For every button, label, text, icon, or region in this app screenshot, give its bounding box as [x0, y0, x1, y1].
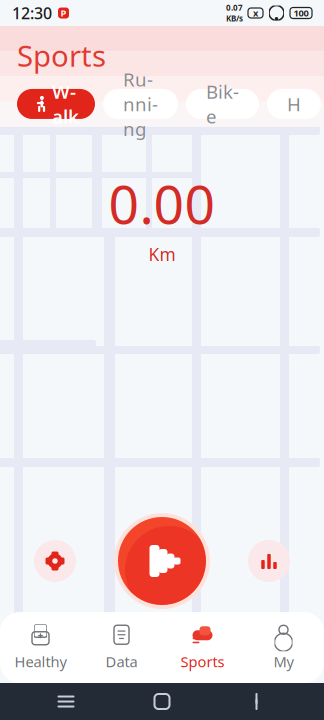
staticText: KB/s [226, 13, 243, 24]
staticText: Walk [52, 79, 79, 129]
staticText: Bike [206, 79, 239, 129]
button[interactable]: Home [132, 683, 192, 720]
staticText: x [253, 7, 258, 19]
button[interactable]: Running [103, 89, 178, 119]
staticText: My [273, 652, 293, 671]
staticText: 100 [293, 7, 308, 19]
staticText: Healthy [14, 652, 66, 671]
staticText: 0.00 [108, 168, 215, 239]
staticText: Km [148, 243, 175, 266]
button[interactable]: Healthy [0, 612, 81, 683]
button[interactable]: My [243, 612, 324, 683]
button[interactable]: Back [228, 683, 288, 720]
button[interactable]: Bike [186, 89, 259, 119]
staticText: 0.07 [226, 2, 243, 13]
staticText: P [60, 7, 66, 19]
button[interactable]: Recent apps [36, 683, 96, 720]
button[interactable]: Start workout [114, 513, 210, 609]
button[interactable]: Settings [34, 540, 76, 582]
staticText: Data [105, 652, 137, 671]
button[interactable]: Data [81, 612, 162, 683]
button[interactable]: Statistics [248, 540, 290, 582]
button[interactable]: H [267, 89, 321, 119]
staticText: 12:30 [12, 2, 52, 24]
staticText: Running [123, 67, 158, 141]
button[interactable]: Walk [17, 89, 95, 119]
staticText: H [287, 92, 301, 116]
button[interactable]: Sports [162, 612, 243, 683]
staticText: Sports [17, 36, 106, 75]
staticText: Sports [180, 652, 224, 671]
